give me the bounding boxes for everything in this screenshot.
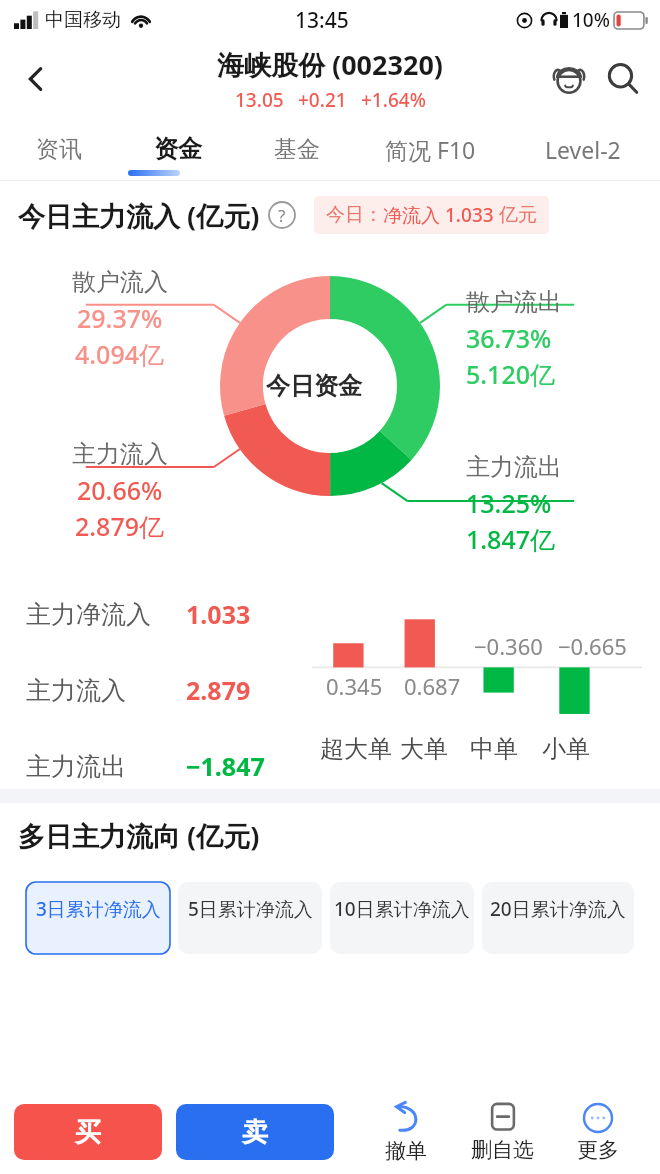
staticText: 13.25% xyxy=(466,486,552,520)
button[interactable]: Back xyxy=(8,51,64,107)
button[interactable]: Level-2 xyxy=(505,118,660,180)
staticText: 10% xyxy=(572,7,610,33)
staticText: −1.847 xyxy=(186,749,265,783)
button[interactable]: 买 xyxy=(14,1104,162,1160)
button[interactable]: 简况 F10 xyxy=(356,118,505,180)
staticText: 海峡股份 (002320) xyxy=(217,46,443,83)
staticText: 主力流入 xyxy=(26,675,126,706)
button[interactable]: 基金 xyxy=(237,118,356,180)
staticText: 净流入 xyxy=(383,202,445,228)
staticText: 小单 xyxy=(542,734,590,764)
staticText: −0.360 xyxy=(474,631,543,661)
staticText: 20日累计净流入 xyxy=(490,896,626,922)
staticText: 删自选 xyxy=(471,1137,534,1163)
staticText: 0.687 xyxy=(404,671,461,701)
staticText: 主力流入 xyxy=(72,439,168,469)
staticText: 10日累计净流入 xyxy=(334,896,470,922)
button[interactable]: 卖 xyxy=(176,1104,334,1160)
staticText: +1.64% xyxy=(361,87,426,113)
staticText: 大单 xyxy=(400,734,448,764)
staticText: 20.66% xyxy=(77,473,163,507)
staticText: 今日资金 xyxy=(266,371,362,401)
staticText: 主力流出 xyxy=(26,751,126,782)
staticText: 13:45 xyxy=(295,6,349,35)
staticText: 36.73% xyxy=(466,321,552,355)
button[interactable]: Help xyxy=(268,201,296,229)
staticText: ? xyxy=(278,204,286,227)
staticText: 多日主力流向 (亿元) xyxy=(18,817,260,854)
staticText: 撤单 xyxy=(385,1138,427,1164)
button[interactable]: 撤单 xyxy=(358,1090,454,1174)
button[interactable]: 10日累计净流入 xyxy=(330,882,474,954)
staticText: 主力流出 xyxy=(466,452,562,482)
staticText: 1.847亿 xyxy=(466,522,556,556)
button[interactable]: 删自选 xyxy=(454,1090,550,1174)
staticText: 5日累计净流入 xyxy=(188,896,313,922)
button[interactable]: Customer service xyxy=(542,52,596,106)
staticText: 0.345 xyxy=(326,671,383,701)
staticText: 亿元 xyxy=(499,203,537,227)
button[interactable]: 20日累计净流入 xyxy=(482,882,634,954)
staticText: 买 xyxy=(75,1116,101,1149)
staticText: 中单 xyxy=(470,734,518,764)
button[interactable]: 5日累计净流入 xyxy=(178,882,322,954)
staticText: 2.879亿 xyxy=(75,509,165,543)
staticText: 3日累计净流入 xyxy=(36,896,161,922)
staticText: 更多 xyxy=(577,1137,619,1163)
staticText: 散户流出 xyxy=(466,287,562,317)
staticText: 1.033 xyxy=(445,202,499,228)
staticText: 主力净流入 xyxy=(26,599,151,630)
button[interactable]: 资金 xyxy=(118,118,237,180)
staticText: 4.094亿 xyxy=(75,337,165,371)
staticText: 5.120亿 xyxy=(466,357,556,391)
staticText: +0.21 xyxy=(298,87,347,113)
button[interactable]: 更多 xyxy=(550,1090,646,1174)
staticText: −0.665 xyxy=(558,631,627,661)
staticText: 2.879 xyxy=(186,673,251,707)
button[interactable]: Search xyxy=(596,52,650,106)
staticText: 超大单 xyxy=(320,734,392,764)
staticText: 卖 xyxy=(242,1116,268,1149)
staticText: 资金 xyxy=(154,134,202,164)
staticText: 1.033 xyxy=(186,597,251,631)
staticText: 今日主力流入 (亿元) xyxy=(18,197,260,234)
button[interactable]: 3日累计净流入 xyxy=(26,882,170,954)
staticText: 资讯 xyxy=(36,135,82,164)
button[interactable]: 资讯 xyxy=(0,118,118,180)
staticText: 今日： xyxy=(326,203,383,227)
button[interactable]: 今日： xyxy=(326,202,537,228)
staticText: Level-2 xyxy=(545,134,621,165)
staticText: 基金 xyxy=(274,135,320,164)
staticText: 散户流入 xyxy=(72,267,168,297)
staticText: 29.37% xyxy=(77,301,163,335)
staticText: 简况 F10 xyxy=(385,134,476,165)
staticText: 中国移动 xyxy=(45,8,121,32)
staticText: 13.05 xyxy=(235,87,284,113)
